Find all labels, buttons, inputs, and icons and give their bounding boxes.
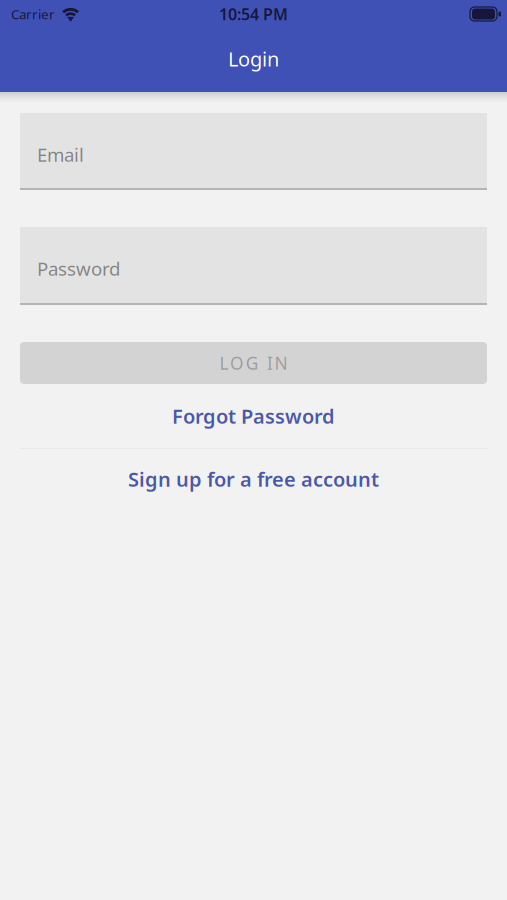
staticText: Login bbox=[228, 45, 279, 72]
staticText: Carrier bbox=[11, 5, 55, 23]
button[interactable]: LOG IN bbox=[20, 342, 487, 384]
staticText: Password bbox=[37, 256, 120, 281]
button[interactable]: Forgot Password bbox=[20, 384, 487, 448]
button[interactable]: Sign up for a free account bbox=[20, 449, 487, 509]
button[interactable]: Email bbox=[20, 113, 487, 190]
staticText: Sign up for a free account bbox=[128, 466, 379, 492]
staticText: 10:54 PM bbox=[219, 3, 288, 25]
staticText: LOG IN bbox=[219, 351, 287, 374]
staticText: Forgot Password bbox=[172, 403, 335, 429]
staticText: Email bbox=[37, 142, 84, 167]
button[interactable]: Password bbox=[20, 227, 487, 305]
